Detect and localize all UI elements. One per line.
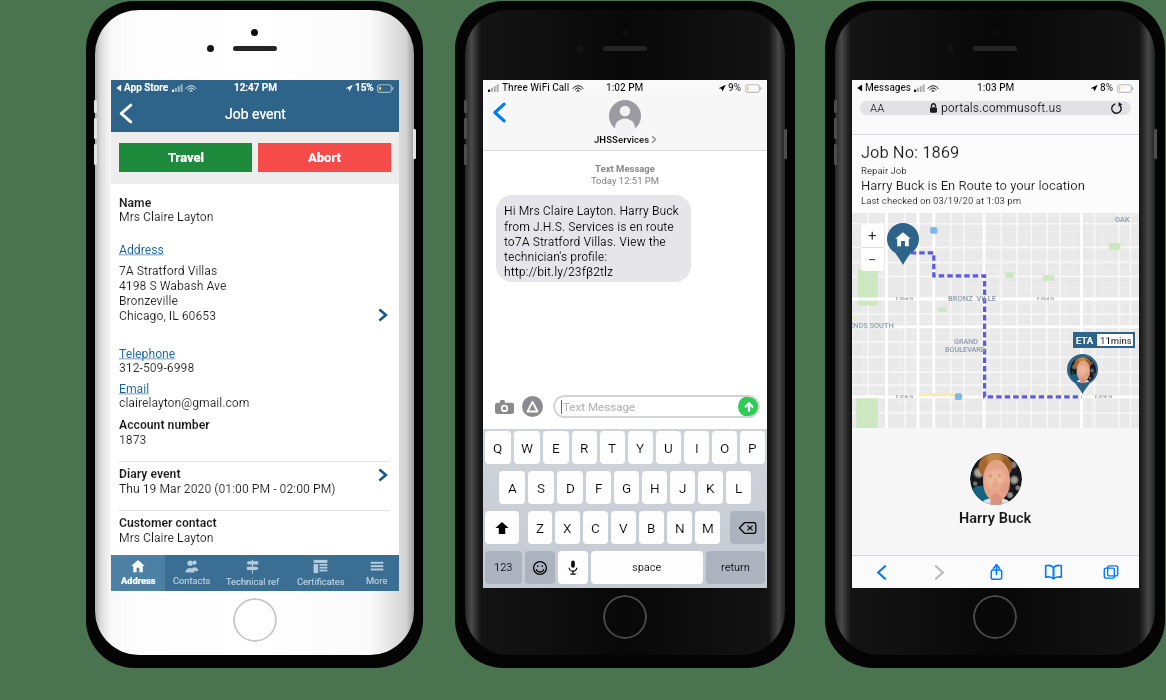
button[interactable]: Y [628,431,653,464]
button[interactable]: More [354,555,399,591]
button[interactable]: App Store [522,396,543,417]
staticText: A [508,480,517,496]
button[interactable]: Z [528,511,552,544]
button[interactable]: J [670,471,695,504]
button[interactable]: Zoom in [861,224,884,247]
staticText: JHSServices [594,134,650,145]
button[interactable]: W [514,431,540,464]
staticText: N [675,520,685,536]
button[interactable]: H [642,471,667,504]
staticText: Bronzeville [119,294,178,308]
button[interactable]: D [557,471,583,504]
button[interactable]: Bookmarks [1025,556,1082,588]
button[interactable]: Dictation [558,551,588,584]
staticText: D [566,480,575,496]
staticText: 12:47 PM [234,82,277,94]
button[interactable]: JHSServices [594,100,656,145]
staticText: ENDS SOUTH [852,321,894,330]
staticText: Messages [865,82,911,94]
button[interactable]: Diary event [111,467,399,503]
staticText: portals.commusoft.us [941,101,1062,115]
button[interactable]: Back [852,556,910,588]
staticText: Address [121,575,156,586]
staticText: 1:03 PM [977,82,1015,94]
button[interactable]: Abort [258,143,391,172]
staticText: Text Message [483,163,767,174]
button[interactable]: Emoji [525,551,555,584]
button[interactable]: P [740,431,765,464]
button[interactable]: Text Message [553,395,760,418]
button[interactable]: Shift [485,511,519,544]
staticText: I [695,440,699,456]
staticText: GRAND [954,337,978,345]
staticText: 7A Stratford Villas [119,264,218,278]
staticText: R [580,440,589,456]
button[interactable]: Forward [910,556,968,588]
staticText: AA [870,102,885,115]
button[interactable]: C [583,511,608,544]
button[interactable]: G [614,471,639,504]
staticText: Thu 19 Mar 2020 (01:00 PM - 02:00 PM) [119,482,336,496]
button[interactable]: Send [738,396,759,417]
staticText: Mrs Claire Layton [119,210,214,224]
staticText: 11mins [1100,335,1132,346]
staticText: Q [493,440,503,456]
button[interactable]: A [499,471,525,504]
staticText: M [702,520,714,536]
staticText: 15% [355,82,374,94]
button[interactable]: AA [860,101,1131,115]
button[interactable]: return [706,551,765,584]
staticText: Technical ref [226,576,280,587]
button[interactable]: B [639,511,664,544]
button[interactable]: T [600,431,625,464]
button[interactable]: Back [486,98,512,126]
button[interactable]: Contacts [165,555,218,591]
button[interactable]: E [543,431,569,464]
button[interactable]: Harry Buck profile photo [970,453,1022,505]
staticText: space [632,561,662,574]
button[interactable]: Tabs [1082,556,1139,588]
staticText: Job event [225,106,286,122]
button[interactable]: Backspace [730,511,765,544]
staticText: Y [636,440,645,456]
button[interactable]: X [555,511,580,544]
button[interactable]: F [586,471,611,504]
staticText: Customer contact [119,516,217,530]
staticText: ETA [1076,335,1094,346]
staticText: App Store [124,82,169,94]
button[interactable]: Back [111,95,141,132]
button[interactable]: Address [111,555,165,591]
button[interactable]: I [684,431,709,464]
button[interactable]: O [712,431,737,464]
button[interactable]: Share [968,556,1025,588]
staticText: Certificates [297,576,345,587]
button[interactable]: 123 [485,551,522,584]
button[interactable]: M [695,511,720,544]
button[interactable]: Reload [1109,101,1123,115]
button[interactable]: N [667,511,692,544]
button[interactable]: Zoom out [861,248,884,271]
button[interactable]: Address [111,243,399,325]
staticText: Email [119,382,150,396]
button[interactable]: Travel [119,143,252,172]
button[interactable]: Certificates [287,555,354,591]
button[interactable]: K [698,471,723,504]
button[interactable]: Technical ref [218,555,287,591]
staticText: W [521,440,533,456]
button[interactable]: S [528,471,554,504]
staticText: S [537,480,546,496]
button[interactable]: space [591,551,703,584]
button[interactable]: L [726,471,751,504]
button[interactable]: U [656,431,681,464]
staticText: OAK [1115,215,1130,224]
button[interactable]: R [572,431,597,464]
button[interactable]: Q [485,431,511,464]
button[interactable]: V [611,511,636,544]
staticText: Repair Job [861,165,907,176]
staticText: Job No: 1869 [861,143,960,162]
staticText: E 47th St [896,394,914,399]
button[interactable]: Camera [494,399,514,415]
staticText: 1:02 PM [606,82,644,94]
staticText: Travel [168,150,204,165]
staticText: BRONZ VILLE [948,294,997,303]
